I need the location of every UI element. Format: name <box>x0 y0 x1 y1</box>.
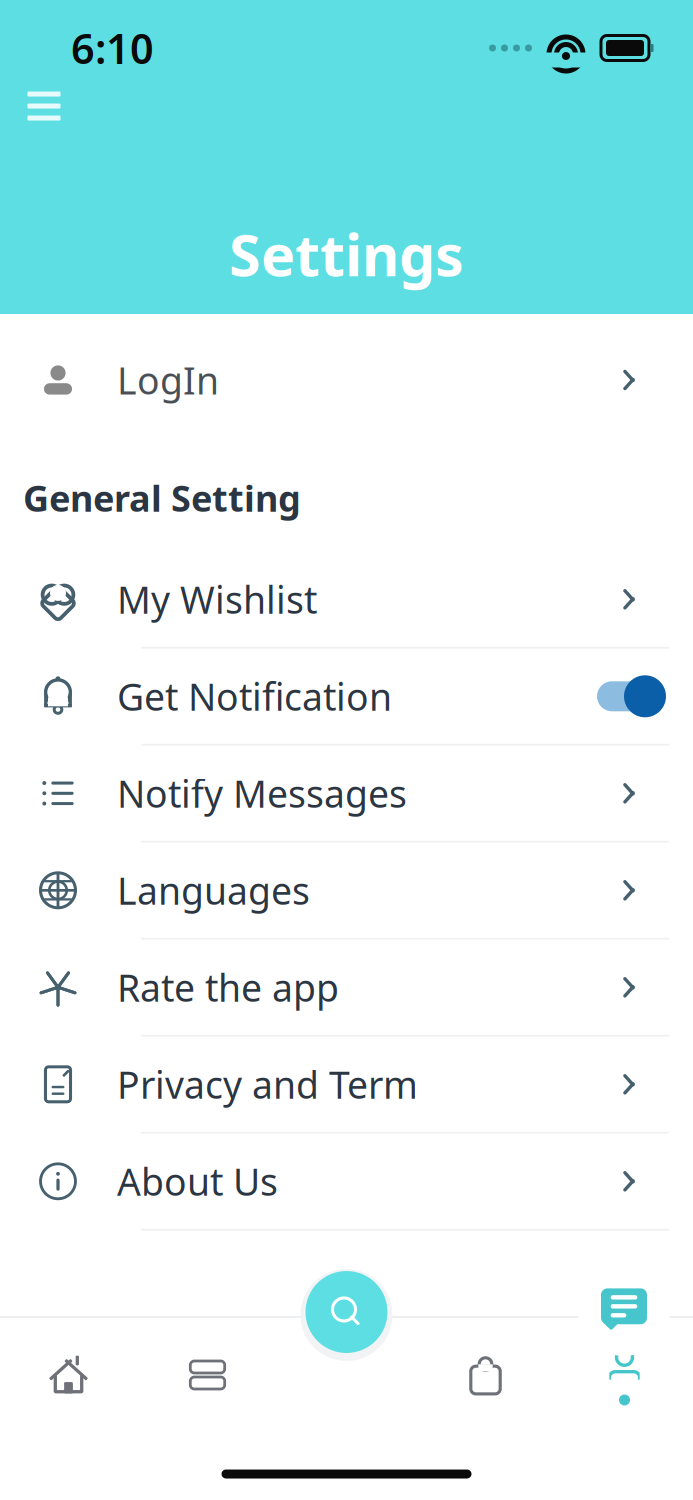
button[interactable]: Categories <box>138 1330 277 1420</box>
staticText: Privacy and Term <box>117 1059 418 1109</box>
button[interactable]: Rate the app <box>0 940 693 1037</box>
button[interactable]: Notify Messages <box>0 746 693 843</box>
button[interactable]: My Wishlist <box>0 552 693 649</box>
staticText: LogIn <box>117 355 219 405</box>
staticText: Settings <box>229 216 464 292</box>
button[interactable]: Languages <box>0 843 693 940</box>
staticText: Notify Messages <box>117 768 407 818</box>
button[interactable]: Cart <box>416 1330 555 1420</box>
staticText: 6:10 <box>71 21 154 75</box>
button[interactable]: Menu <box>13 78 75 134</box>
button[interactable]: LogIn <box>0 314 693 446</box>
staticText: Get Notification <box>117 671 392 721</box>
button[interactable]: Privacy and Term <box>0 1037 693 1134</box>
staticText: Rate the app <box>117 962 339 1012</box>
button[interactable]: Profile <box>555 1330 693 1420</box>
button[interactable]: Home <box>0 1330 138 1420</box>
button[interactable]: Get Notification <box>0 649 693 746</box>
staticText: General Setting <box>23 474 301 522</box>
staticText: My Wishlist <box>117 574 317 624</box>
staticText: Languages <box>117 865 310 915</box>
button[interactable]: Search <box>305 1271 387 1353</box>
button[interactable]: Chat support <box>578 1264 670 1356</box>
staticText: About Us <box>117 1156 278 1206</box>
button[interactable]: About Us <box>0 1134 693 1231</box>
